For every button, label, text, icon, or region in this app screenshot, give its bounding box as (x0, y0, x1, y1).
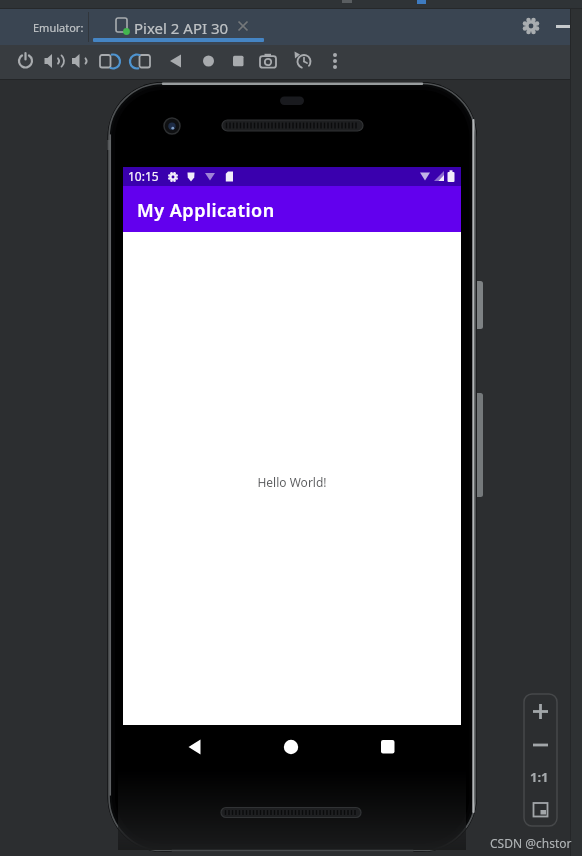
button[interactable] (236, 19, 251, 34)
button[interactable] (293, 50, 315, 72)
button[interactable] (197, 50, 219, 72)
staticText: Hello World! (123, 474, 461, 856)
button[interactable] (14, 50, 36, 72)
button[interactable] (68, 50, 90, 72)
button[interactable] (522, 16, 542, 36)
button[interactable] (324, 50, 346, 72)
button[interactable] (165, 50, 187, 72)
staticText: 10:15 (128, 168, 159, 184)
button[interactable] (180, 735, 206, 761)
button[interactable] (41, 50, 63, 72)
button[interactable] (375, 735, 401, 761)
staticText: 1:1 (530, 768, 549, 786)
button[interactable] (527, 797, 554, 824)
button[interactable] (278, 735, 304, 761)
button[interactable] (257, 50, 279, 72)
staticText: Pixel 2 API 30 (134, 18, 229, 38)
button[interactable] (227, 50, 249, 72)
staticText: CSDN @chstor (490, 835, 572, 851)
button[interactable] (550, 16, 574, 36)
button[interactable] (110, 12, 260, 42)
staticText: Emulator: (33, 20, 84, 35)
button[interactable] (527, 764, 554, 791)
button[interactable] (129, 50, 151, 72)
button[interactable] (527, 698, 554, 725)
button[interactable] (527, 731, 554, 758)
staticText: My Application (137, 198, 275, 223)
button[interactable] (99, 50, 121, 72)
